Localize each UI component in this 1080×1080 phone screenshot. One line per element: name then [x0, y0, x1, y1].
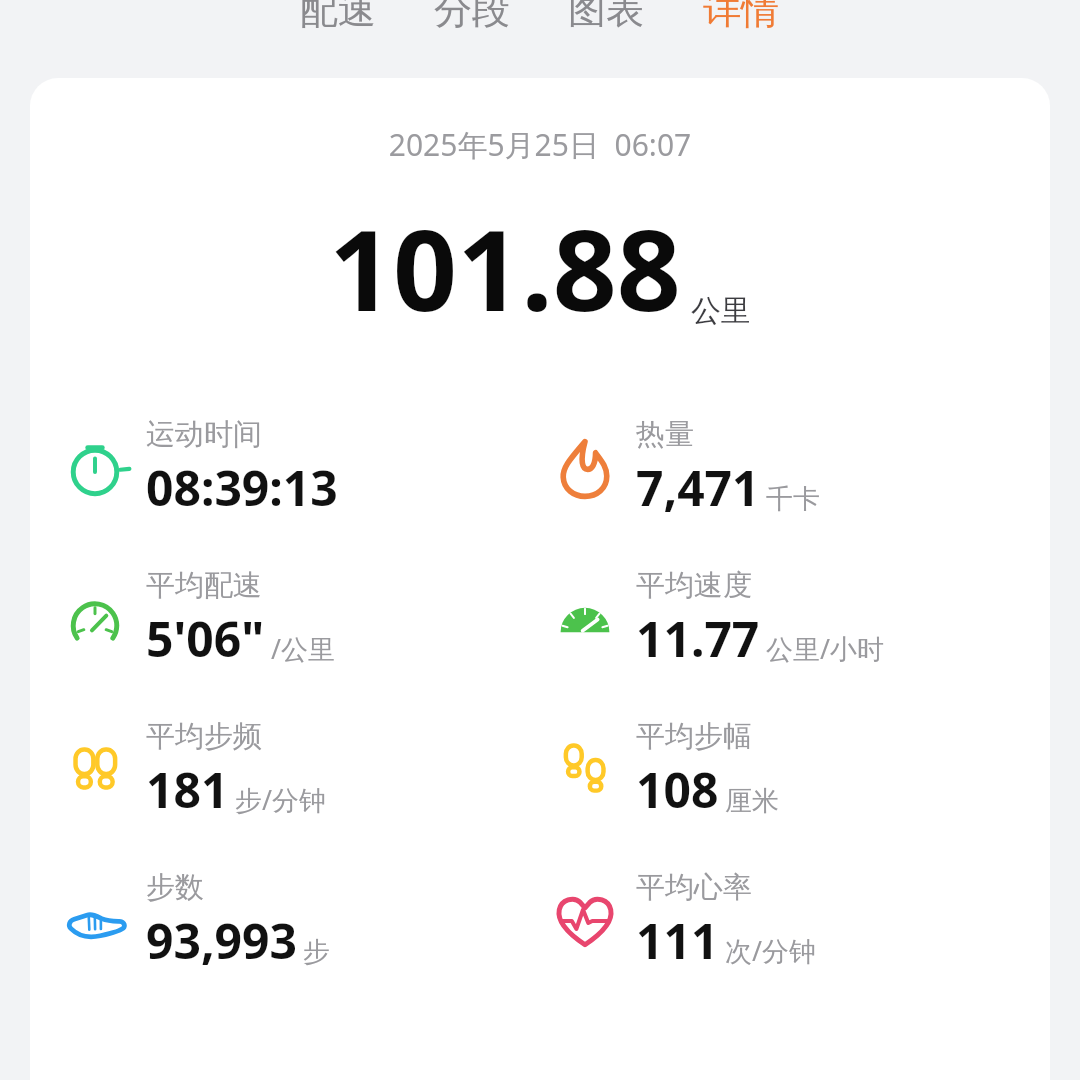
staticText: 步数 [146, 869, 204, 906]
staticText: 公里 [691, 292, 751, 330]
staticText: 11.77 [636, 606, 760, 671]
staticText: 分段 [434, 0, 510, 34]
staticText: 次/分钟 [725, 932, 817, 969]
staticText: 5'06" [146, 606, 265, 671]
button[interactable]: 图表 [560, 0, 652, 38]
staticText: 7,471 [636, 455, 760, 520]
staticText: 08:39:13 [146, 455, 338, 520]
staticText: 配速 [300, 0, 376, 34]
staticText: 运动时间 [146, 416, 262, 453]
button[interactable]: Workout duration [62, 416, 540, 520]
staticText: 111 [636, 908, 719, 973]
staticText: /公里 [271, 630, 336, 667]
other: Average heart rate [552, 888, 618, 954]
other: Average cadence [62, 737, 128, 803]
staticText: 108 [636, 757, 719, 822]
button[interactable]: Average heart rate [552, 869, 1050, 973]
staticText: 厘米 [725, 784, 779, 818]
staticText: 181 [146, 757, 229, 822]
staticText: 公里/小时 [766, 630, 885, 667]
button[interactable]: Average pace [62, 567, 540, 671]
staticText: 101.88 [329, 191, 681, 344]
staticText: 热量 [636, 416, 694, 453]
staticText: 详情 [703, 0, 779, 34]
button[interactable]: Calories [552, 416, 1050, 520]
other: Average speed [552, 586, 618, 652]
staticText: 平均速度 [636, 567, 752, 604]
other: Steps [62, 888, 128, 954]
staticText: 步/分钟 [235, 781, 327, 818]
staticText: 步 [303, 935, 330, 969]
button[interactable]: 分段 [426, 0, 518, 38]
staticText: 平均心率 [636, 869, 752, 906]
other: Average pace [62, 586, 128, 652]
staticText: 平均配速 [146, 567, 262, 604]
staticText: 千卡 [766, 482, 820, 516]
other: Average stride [552, 737, 618, 803]
staticText: 图表 [568, 0, 644, 34]
staticText: 平均步频 [146, 718, 262, 755]
staticText: 2025年5月25日 06:07 [30, 124, 1050, 165]
other: Workout duration [62, 435, 128, 501]
button[interactable]: Average speed [552, 567, 1050, 671]
other: Calories [552, 435, 618, 501]
button[interactable]: 详情 [694, 0, 788, 38]
button[interactable]: Average cadence [62, 718, 540, 822]
staticText: 93,993 [146, 908, 297, 973]
staticText: 平均步幅 [636, 718, 752, 755]
button[interactable]: Steps [62, 869, 540, 973]
button[interactable]: 配速 [292, 0, 384, 38]
button[interactable]: Average stride [552, 718, 1050, 822]
